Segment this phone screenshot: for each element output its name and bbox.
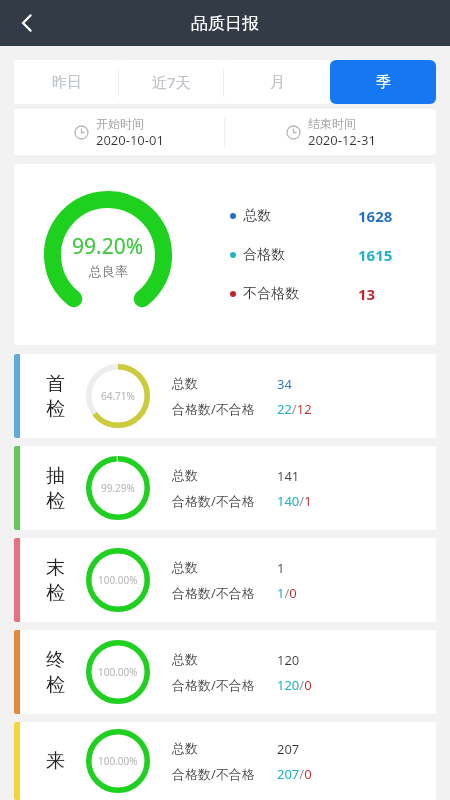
staticText: 64.71% (101, 389, 135, 403)
button[interactable]: 首 (14, 354, 436, 438)
button[interactable]: 终 (14, 630, 436, 714)
staticText: 总数 (243, 207, 271, 225)
staticText: 不合格数 (243, 285, 299, 303)
button[interactable]: 来 (14, 722, 436, 800)
staticText: 141 (277, 467, 300, 485)
staticText: 99.29% (101, 481, 135, 495)
staticText: 34 (277, 375, 292, 393)
staticText: 抽 (46, 464, 65, 488)
staticText: 首 (46, 372, 65, 396)
staticText: 总数 (172, 467, 277, 483)
staticText: 末 (46, 556, 65, 580)
staticText: 检 (46, 397, 65, 421)
staticText: 207/0 (277, 765, 312, 783)
button[interactable]: 昨日 (14, 60, 119, 104)
staticText: 1/0 (277, 584, 297, 602)
staticText: 开始时间 (96, 116, 144, 131)
staticText: 22/12 (277, 400, 312, 418)
staticText: 1 (277, 559, 285, 577)
staticText: 合格数/不合格 (172, 492, 277, 510)
staticText: 品质日报 (191, 13, 259, 34)
staticText: 99.20% (72, 232, 144, 261)
button[interactable]: 末 (14, 538, 436, 622)
staticText: 13 (358, 284, 410, 304)
button[interactable]: Back (6, 2, 48, 44)
staticText: 总数 (172, 651, 277, 667)
staticText: 检 (46, 581, 65, 605)
staticText: 结束时间 (308, 116, 356, 131)
button[interactable]: 开始时间 (14, 109, 224, 155)
staticText: 近7天 (152, 72, 191, 92)
staticText: 总数 (172, 559, 277, 575)
button[interactable]: 抽 (14, 446, 436, 530)
staticText: 合格数 (243, 246, 285, 264)
staticText: 合格数/不合格 (172, 584, 277, 602)
staticText: 2020-12-31 (308, 131, 376, 149)
staticText: 207 (277, 740, 300, 758)
staticText: 1615 (358, 245, 410, 265)
staticText: 检 (46, 489, 65, 513)
button[interactable]: 季 (330, 60, 436, 104)
staticText: 季 (376, 73, 391, 92)
staticText: 2020-10-01 (96, 131, 164, 149)
staticText: 合格数/不合格 (172, 400, 277, 418)
staticText: 来 (46, 749, 65, 773)
button[interactable]: 结束时间 (225, 109, 436, 155)
button[interactable]: 近7天 (119, 60, 224, 104)
staticText: 120/0 (277, 676, 312, 694)
button[interactable]: 月 (224, 60, 330, 104)
staticText: 140/1 (277, 492, 312, 510)
staticText: 合格数/不合格 (172, 676, 277, 694)
staticText: 总良率 (89, 263, 128, 279)
staticText: 100.00% (98, 754, 138, 768)
staticText: 100.00% (98, 573, 138, 587)
staticText: 月 (270, 73, 285, 92)
staticText: 总数 (172, 740, 277, 756)
staticText: 检 (46, 673, 65, 697)
staticText: 总数 (172, 375, 277, 391)
staticText: 合格数/不合格 (172, 765, 277, 783)
staticText: 120 (277, 651, 300, 669)
staticText: 1628 (358, 206, 410, 226)
staticText: 100.00% (98, 665, 138, 679)
staticText: 终 (46, 648, 65, 672)
staticText: 昨日 (52, 73, 82, 92)
